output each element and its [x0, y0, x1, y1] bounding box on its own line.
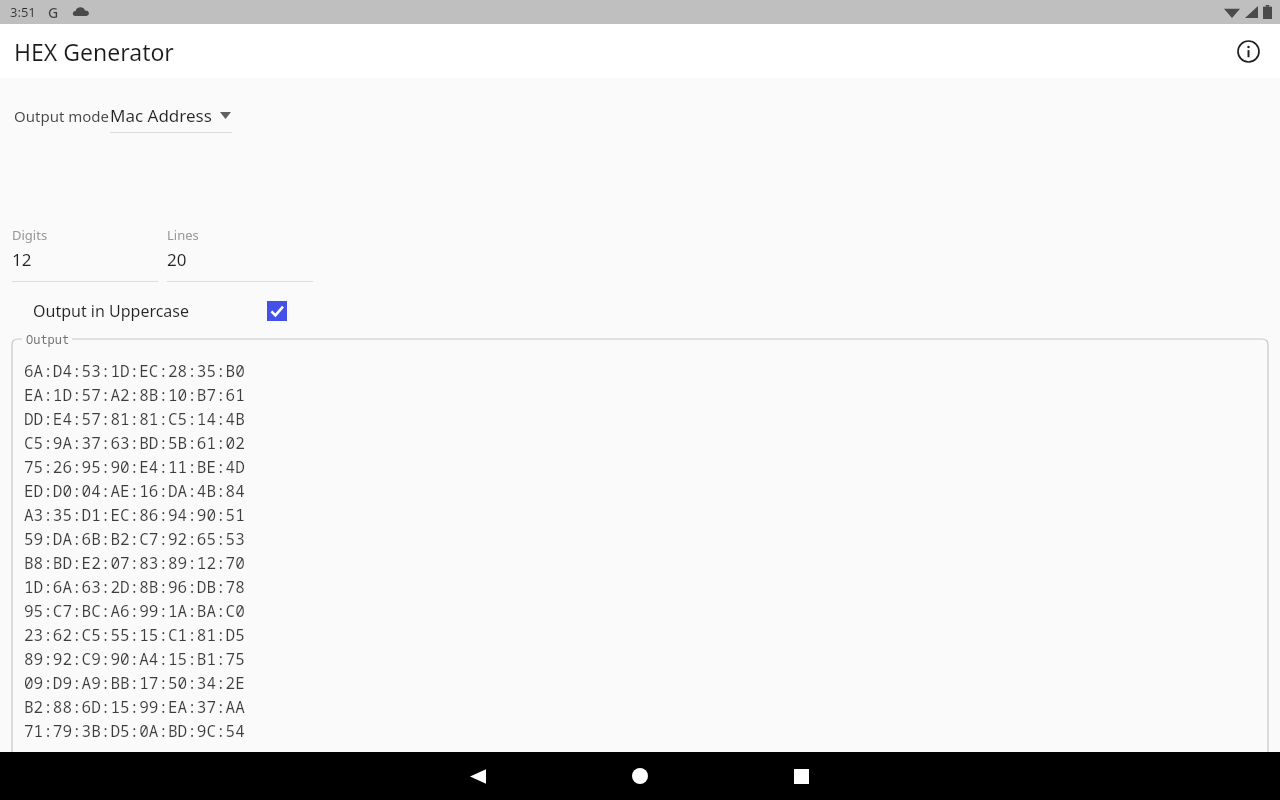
staticText: 09:D9:A9:BB:17:50:34:2E: [24, 672, 245, 696]
button[interactable]: Recents: [779, 754, 823, 798]
staticText: Lines: [167, 226, 199, 244]
staticText: 23:62:C5:55:15:C1:81:D5: [24, 624, 245, 648]
staticText: 3:51: [10, 3, 36, 21]
staticText: B2:88:6D:15:99:EA:37:AA: [24, 696, 245, 720]
staticText: 95:C7:BC:A6:99:1A:BA:C0: [24, 600, 245, 624]
button[interactable]: Home: [618, 754, 662, 798]
button[interactable]: Output in Uppercase: [14, 292, 288, 330]
staticText: ED:D0:04:AE:16:DA:4B:84: [24, 480, 245, 504]
staticText: C5:9A:37:63:BD:5B:61:02: [24, 432, 245, 456]
staticText: Output in Uppercase: [33, 300, 190, 322]
staticText: 75:26:95:90:E4:11:BE:4D: [24, 456, 245, 480]
staticText: Output: [26, 331, 70, 347]
button[interactable]: Digits: [12, 226, 158, 284]
staticText: 89:92:C9:90:A4:15:B1:75: [24, 648, 245, 672]
staticText: 59:DA:6B:B2:C7:92:65:53: [24, 528, 245, 552]
staticText: 12: [12, 248, 32, 271]
staticText: Mac Address: [110, 104, 212, 127]
staticText: 71:79:3B:D5:0A:BD:9C:54: [24, 720, 245, 744]
staticText: HEX Generator: [14, 36, 174, 67]
staticText: G: [48, 3, 59, 22]
button[interactable]: Lines: [167, 226, 313, 284]
staticText: EA:1D:57:A2:8B:10:B7:61: [24, 384, 245, 408]
staticText: Digits: [12, 226, 48, 244]
button[interactable]: Mac Address: [110, 98, 232, 132]
staticText: Output mode: [14, 106, 109, 126]
staticText: 6A:D4:53:1D:EC:28:35:B0: [24, 360, 245, 384]
staticText: 20: [167, 248, 187, 271]
staticText: B8:BD:E2:07:83:89:12:70: [24, 552, 245, 576]
button[interactable]: Back: [455, 754, 499, 798]
staticText: 1D:6A:63:2D:8B:96:DB:78: [24, 576, 245, 600]
staticText: A3:35:D1:EC:86:94:90:51: [24, 504, 245, 528]
button[interactable]: Info: [1228, 31, 1268, 71]
staticText: DD:E4:57:81:81:C5:14:4B: [24, 408, 245, 432]
